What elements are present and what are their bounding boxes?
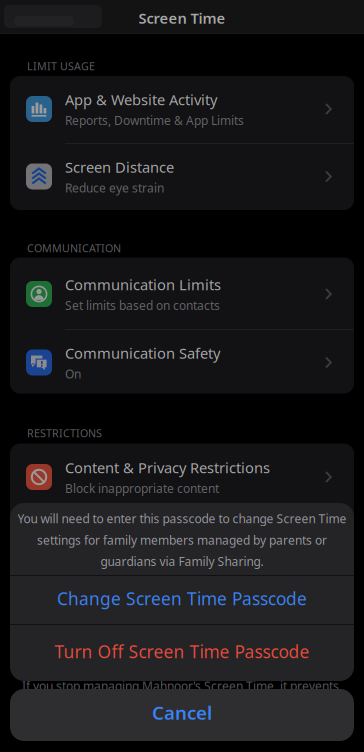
- staticText: Content & Privacy Restrictions: [65, 458, 270, 477]
- button[interactable]: Screen Distance: [10, 143, 354, 209]
- staticText: settings for family members managed by p…: [37, 532, 327, 548]
- button[interactable]: Content & Privacy Restrictions: [10, 444, 354, 510]
- staticText: Set limits based on contacts: [65, 297, 220, 313]
- staticText: COMMUNICATION: [27, 241, 121, 255]
- staticText: Reports, Downtime & App Limits: [65, 112, 244, 128]
- staticText: Block inappropriate content: [65, 480, 219, 496]
- staticText: On: [65, 366, 81, 382]
- staticText: guardians via Family Sharing.: [100, 553, 263, 569]
- staticText: Cancel: [152, 700, 212, 725]
- staticText: Reduce eye strain: [65, 180, 164, 196]
- button[interactable]: Change Screen Time Passcode: [10, 575, 354, 621]
- staticText: Communication Safety: [65, 343, 220, 363]
- staticText: Turn Off Screen Time Passcode: [54, 640, 309, 663]
- staticText: Communication Limits: [65, 275, 221, 294]
- staticText: Screen Time: [138, 8, 225, 28]
- button[interactable]: Back: [4, 5, 102, 28]
- staticText: Screen Distance: [65, 157, 174, 177]
- staticText: RESTRICTIONS: [27, 426, 102, 440]
- button[interactable]: Cancel: [10, 689, 354, 741]
- button[interactable]: Communication Safety: [10, 329, 354, 395]
- button[interactable]: Communication Limits: [10, 261, 354, 327]
- staticText: You will need to enter this passcode to …: [17, 511, 346, 526]
- staticText: App & Website Activity: [65, 90, 217, 109]
- button[interactable]: Turn Off Screen Time Passcode: [10, 624, 354, 678]
- staticText: LIMIT USAGE: [27, 59, 95, 73]
- staticText: Change Screen Time Passcode: [57, 587, 307, 610]
- button[interactable]: App & Website Activity: [10, 76, 354, 142]
- staticText: If you stop managing Mahnoor's Screen Ti…: [22, 678, 339, 694]
